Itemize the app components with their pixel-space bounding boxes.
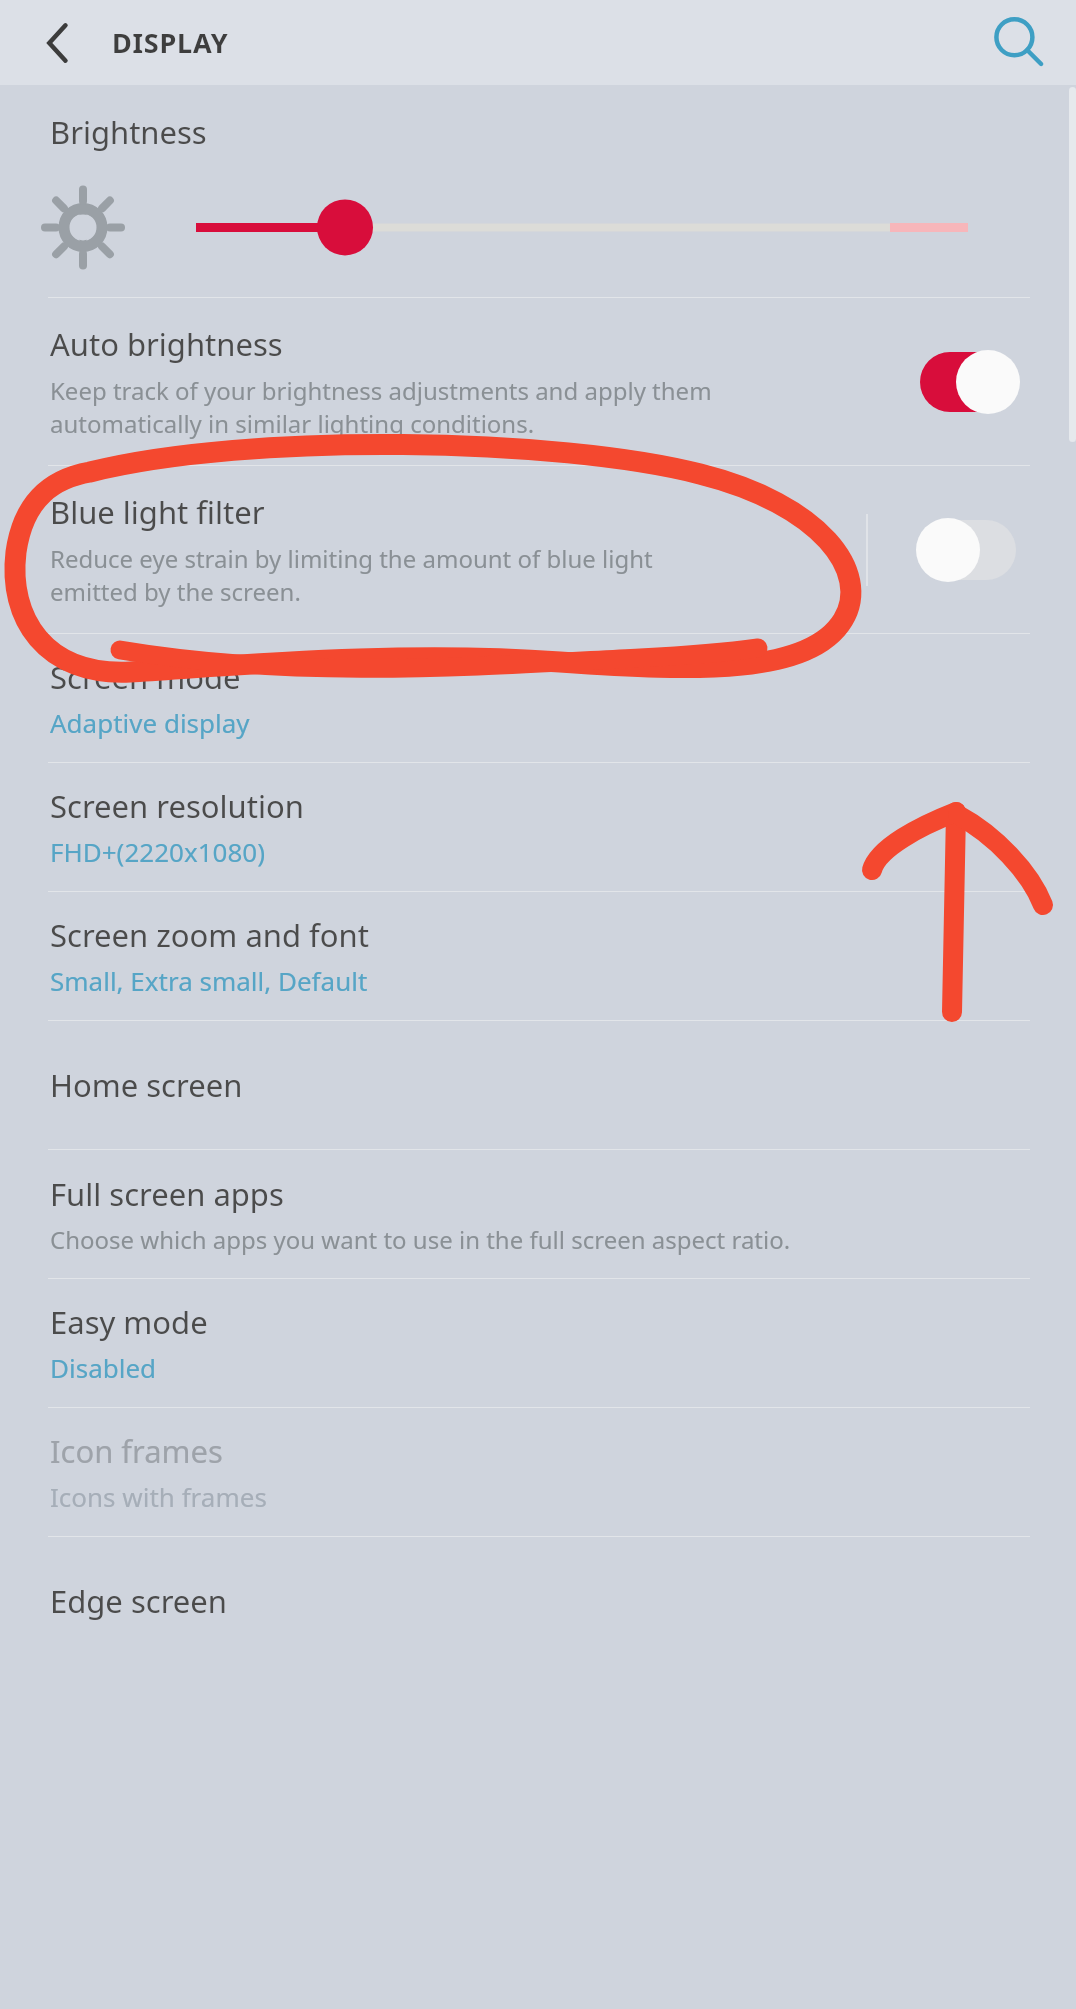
staticText: Choose which apps you want to use in the…: [50, 1223, 791, 1256]
staticText: Edge screen: [50, 1580, 227, 1622]
staticText: Disabled: [50, 1350, 157, 1385]
staticText: Small, Extra small, Default: [50, 963, 368, 998]
button[interactable]: Icon frames: [0, 1408, 1076, 1536]
staticText: FHD+(2220x1080): [50, 834, 265, 869]
staticText: Icon frames: [50, 1430, 223, 1472]
staticText: Brightness: [50, 111, 207, 153]
button[interactable]: Blue light filter, off: [904, 514, 1020, 586]
button[interactable]: Home screen: [0, 1021, 1076, 1149]
staticText: Keep track of your brightness adjustment…: [50, 374, 712, 407]
button[interactable]: Screen resolution: [0, 763, 1076, 891]
staticText: Blue light filter: [50, 491, 265, 533]
button[interactable]: Screen mode: [0, 634, 1076, 762]
button[interactable]: Screen zoom and font: [0, 892, 1076, 1020]
button[interactable]: Easy mode: [0, 1279, 1076, 1407]
button[interactable]: Full screen apps: [0, 1150, 1076, 1278]
staticText: DISPLAY: [112, 24, 229, 61]
button[interactable]: Back: [20, 9, 88, 77]
staticText: Reduce eye strain by limiting the amount…: [50, 542, 653, 575]
staticText: Full screen apps: [50, 1173, 284, 1215]
button[interactable]: Search: [982, 7, 1054, 79]
button[interactable]: Blue light filter: [0, 466, 1076, 633]
staticText: Screen resolution: [50, 785, 304, 827]
staticText: Screen zoom and font: [50, 914, 369, 956]
staticText: Easy mode: [50, 1301, 208, 1343]
button[interactable]: Auto brightness, on: [904, 346, 1020, 418]
staticText: automatically in similar lighting condit…: [50, 407, 535, 440]
staticText: Home screen: [50, 1064, 243, 1106]
staticText: Auto brightness: [50, 323, 283, 365]
staticText: emitted by the screen.: [50, 575, 301, 608]
button[interactable]: Auto brightness: [0, 298, 1076, 465]
staticText: Screen mode: [50, 656, 241, 698]
staticText: Adaptive display: [50, 705, 250, 740]
staticText: Icons with frames: [50, 1479, 267, 1514]
button[interactable]: Edge screen: [0, 1537, 1076, 1665]
